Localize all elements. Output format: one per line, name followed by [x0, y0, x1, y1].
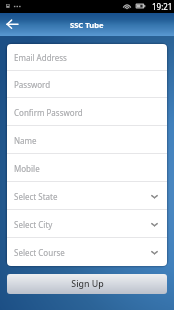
staticText: Name	[14, 135, 37, 146]
button[interactable]: Email Address	[7, 44, 167, 71]
button[interactable]: Select State	[7, 182, 167, 210]
button[interactable]: Name	[7, 126, 167, 154]
staticText: Mobile	[14, 163, 40, 174]
staticText: Email Address	[14, 52, 67, 63]
button[interactable]: Select Course	[7, 238, 167, 266]
button[interactable]: Mobile	[7, 154, 167, 182]
staticText: SSC Tube	[70, 20, 104, 30]
button[interactable]: Password	[7, 71, 167, 98]
button[interactable]: Back	[0, 13, 23, 36]
staticText: Password	[14, 79, 51, 90]
staticText: Select State	[14, 191, 58, 202]
staticText: Sign Up	[71, 278, 104, 290]
staticText: Confirm Password	[14, 107, 83, 118]
button[interactable]: Confirm Password	[7, 98, 167, 126]
button[interactable]: Select City	[7, 210, 167, 238]
staticText: 19:21	[152, 1, 173, 12]
staticText: Select Course	[14, 247, 65, 258]
button[interactable]: Sign Up	[7, 274, 167, 294]
staticText: Select City	[14, 219, 53, 230]
